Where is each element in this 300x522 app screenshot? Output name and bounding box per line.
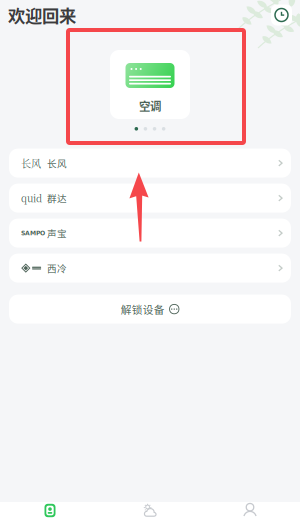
button[interactable]: 解锁设备 [9,295,291,324]
staticText: quid [21,191,42,205]
button[interactable]: quid [9,184,291,213]
button[interactable]: 我的 [200,502,300,522]
staticText: 解锁设备 [121,301,165,317]
staticText: SAMPO [21,229,45,237]
staticText: 空调 [139,97,161,114]
staticText: 西冷 [47,261,67,275]
staticText: 群达 [47,191,67,205]
staticText: 声宝 [47,226,67,240]
staticText: 长风 [47,156,67,170]
button[interactable]: 长风 [9,149,291,178]
button[interactable]: History [271,4,292,25]
staticText: 长风 [21,156,41,170]
button[interactable]: 西冷 [9,254,291,283]
staticText: 欢迎回来 [8,2,76,28]
button[interactable]: SAMPO [9,219,291,248]
button[interactable]: 设备 [0,502,100,522]
button[interactable]: 天气 [100,502,200,522]
